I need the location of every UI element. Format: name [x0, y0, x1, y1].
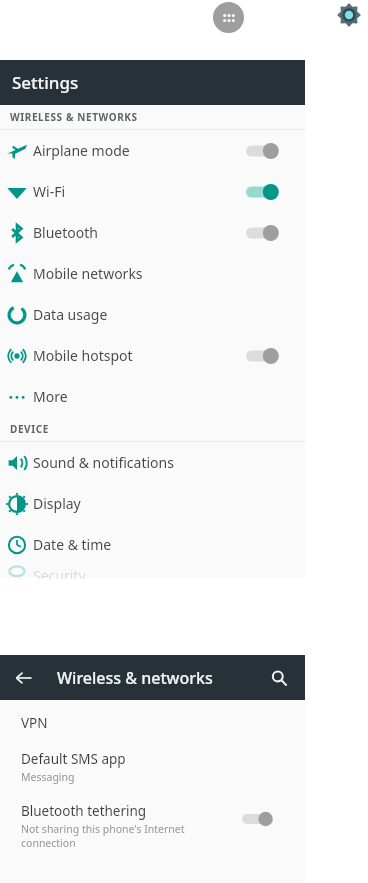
button[interactable]: More	[0, 376, 305, 417]
staticText: Data usage	[33, 305, 108, 324]
button[interactable]: Bluetooth tethering toggle	[242, 810, 276, 828]
staticText: Display	[33, 494, 81, 513]
button[interactable]: Mobile hotspot	[0, 335, 305, 376]
button[interactable]: Mobile networks	[0, 253, 305, 294]
button[interactable]: Apps	[213, 2, 244, 33]
button[interactable]: Bluetooth	[0, 212, 305, 253]
staticText: Wireless & networks	[57, 667, 213, 689]
staticText: Bluetooth tethering	[21, 802, 147, 820]
button[interactable]: Bluetooth toggle	[246, 223, 282, 243]
button[interactable]: Search	[265, 664, 293, 692]
staticText: Mobile networks	[33, 264, 143, 283]
staticText: Messaging	[21, 770, 75, 784]
button[interactable]: Sound & notifications	[0, 442, 305, 483]
button[interactable]: Display	[0, 483, 305, 524]
staticText: Settings	[12, 71, 79, 94]
button[interactable]: Data usage	[0, 294, 305, 335]
staticText: Default SMS app	[21, 750, 126, 768]
staticText: Not sharing this phone's Internet connec…	[21, 822, 185, 850]
button[interactable]: Mobile hotspot toggle	[246, 346, 282, 366]
staticText: More	[33, 387, 68, 406]
button[interactable]: Date & time	[0, 524, 305, 565]
button[interactable]: Wi-Fi	[0, 171, 305, 212]
button[interactable]: Settings	[335, 1, 363, 29]
button[interactable]: Airplane mode	[0, 130, 305, 171]
staticText: Wi-Fi	[33, 182, 66, 201]
button[interactable]: Airplane mode toggle	[246, 141, 282, 161]
staticText: Sound & notifications	[33, 453, 174, 472]
staticText: Security	[33, 566, 86, 579]
button[interactable]: VPN	[0, 714, 305, 732]
button[interactable]: Wi-Fi toggle	[246, 182, 282, 202]
staticText: Airplane mode	[33, 141, 130, 160]
button[interactable]: Back	[10, 664, 38, 692]
staticText: Mobile hotspot	[33, 346, 133, 365]
staticText: WIRELESS & NETWORKS	[10, 110, 138, 124]
button[interactable]: Default SMS app	[0, 750, 305, 784]
staticText: Bluetooth	[33, 223, 98, 242]
button[interactable]: Bluetooth tethering	[0, 802, 305, 850]
staticText: DEVICE	[10, 422, 49, 436]
staticText: VPN	[21, 714, 48, 732]
staticText: Date & time	[33, 535, 112, 554]
